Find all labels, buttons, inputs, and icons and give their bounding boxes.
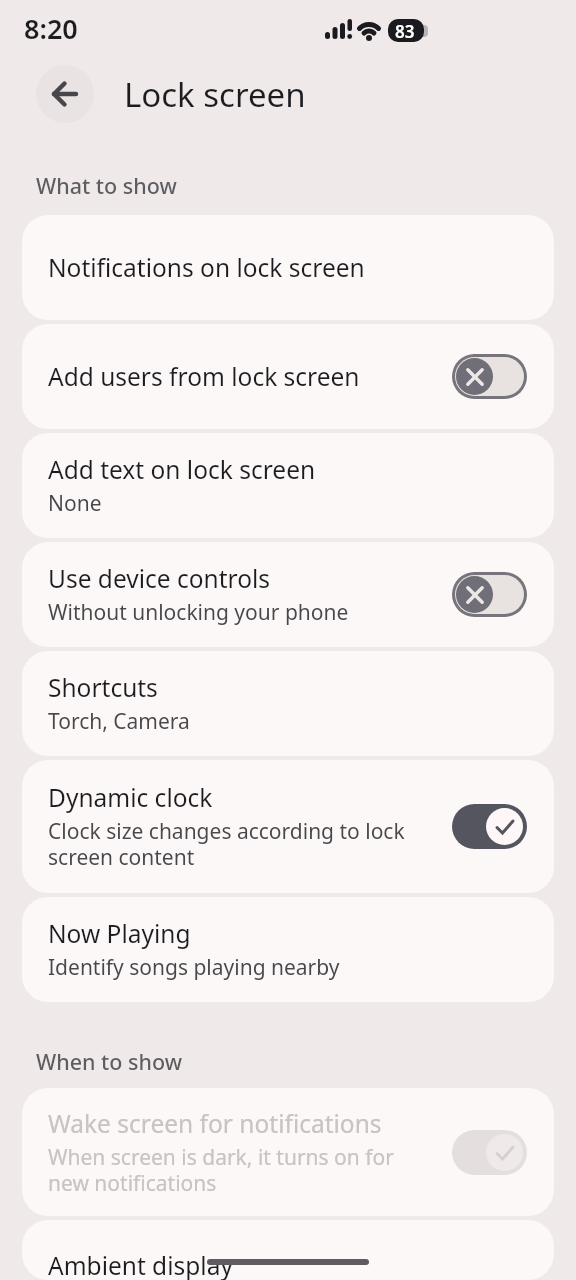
staticText: Wake screen for notifications — [48, 1107, 382, 1140]
button[interactable]: Shortcuts — [22, 651, 554, 756]
button[interactable] — [452, 572, 527, 617]
button[interactable]: Add users from lock screen — [22, 324, 554, 429]
staticText: 8:20 — [24, 10, 78, 46]
button[interactable]: Notifications on lock screen — [22, 215, 554, 320]
button[interactable]: Wake screen for notifications — [22, 1088, 554, 1216]
staticText: Identify songs playing nearby — [48, 953, 340, 982]
button[interactable]: Ambient display — [22, 1220, 554, 1280]
button[interactable]: Dynamic clock — [22, 760, 554, 893]
staticText: Lock screen — [124, 72, 306, 117]
staticText: Add text on lock screen — [48, 453, 316, 486]
staticText: Now Playing — [48, 917, 191, 950]
button[interactable]: Use device controls — [22, 542, 554, 647]
staticText: Without unlocking your phone — [48, 598, 349, 627]
button[interactable] — [452, 354, 527, 399]
staticText: None — [48, 489, 102, 518]
staticText: 83 — [395, 20, 415, 43]
button[interactable]: Add text on lock screen — [22, 433, 554, 538]
button[interactable] — [452, 804, 527, 849]
staticText: Notifications on lock screen — [48, 251, 365, 284]
staticText: Add users from lock screen — [48, 360, 360, 393]
staticText: Dynamic clock — [48, 781, 213, 814]
button[interactable] — [36, 65, 94, 123]
staticText: When screen is dark, it turns on for new… — [48, 1143, 422, 1198]
button[interactable] — [452, 1130, 527, 1175]
staticText: Use device controls — [48, 562, 271, 595]
staticText: Ambient display — [48, 1249, 233, 1280]
button[interactable]: Now Playing — [22, 897, 554, 1002]
staticText: Shortcuts — [48, 671, 158, 704]
staticText: Clock size changes according to lock scr… — [48, 817, 422, 872]
staticText: What to show — [36, 171, 177, 200]
staticText: Torch, Camera — [48, 707, 190, 736]
staticText: When to show — [36, 1047, 183, 1076]
